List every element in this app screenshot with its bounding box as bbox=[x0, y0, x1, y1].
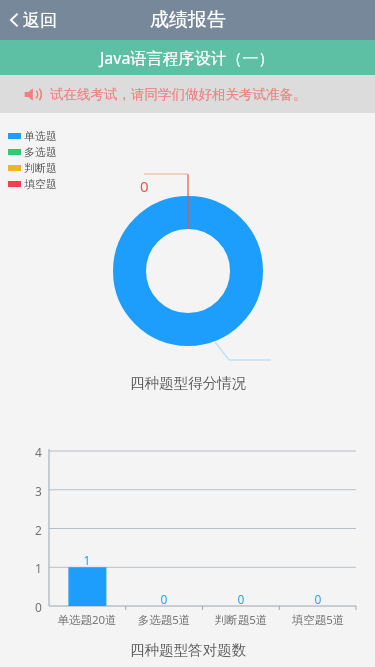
staticText: 试在线考试，请同学们做好相关考试准备。 bbox=[50, 86, 307, 103]
staticText: 0 bbox=[140, 176, 149, 196]
staticText: 4 bbox=[35, 444, 42, 460]
staticText: 填空题5道 bbox=[280, 612, 356, 628]
staticText: 1 bbox=[69, 552, 105, 568]
staticText: 1 bbox=[35, 560, 42, 576]
staticText: 3 bbox=[250, 285, 259, 305]
staticText: 填空题 bbox=[24, 177, 57, 191]
staticText: Java语言程序设计（一） bbox=[100, 47, 275, 69]
staticText: 0 bbox=[223, 591, 259, 607]
staticText: 单选题20道 bbox=[49, 612, 125, 628]
button[interactable]: 通知 bbox=[0, 75, 375, 113]
staticText: 2 bbox=[35, 522, 42, 538]
staticText: 多选题5道 bbox=[126, 612, 202, 628]
button[interactable]: 返回 bbox=[0, 0, 69, 40]
staticText: 0 bbox=[35, 599, 42, 615]
staticText: 四种题型答对题数 bbox=[130, 641, 246, 659]
other: 通知 bbox=[24, 87, 41, 102]
staticText: 3 bbox=[35, 483, 42, 499]
staticText: 多选题 bbox=[24, 145, 57, 159]
staticText: 0 bbox=[146, 591, 182, 607]
staticText: 0 bbox=[300, 591, 336, 607]
staticText: 单选题 bbox=[24, 129, 57, 143]
staticText: 返回 bbox=[23, 10, 57, 31]
staticText: 判断题5道 bbox=[203, 612, 279, 628]
staticText: 判断题 bbox=[24, 161, 57, 175]
staticText: 四种题型得分情况 bbox=[130, 374, 246, 392]
staticText: 成绩报告 bbox=[150, 8, 226, 32]
